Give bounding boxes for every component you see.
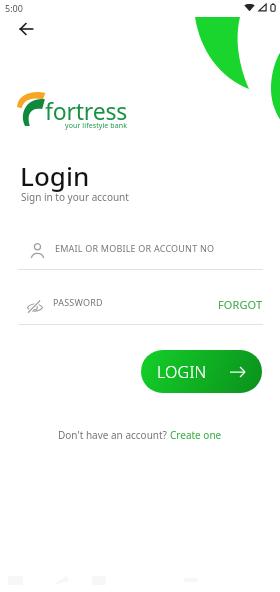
staticText: Sign in to your account: [21, 190, 129, 204]
button[interactable]: FORGOT: [218, 297, 280, 312]
staticText: LOGIN: [157, 361, 207, 383]
staticText: Login: [20, 158, 90, 193]
button[interactable]: Back: [7, 10, 45, 48]
staticText: EMAIL OR MOBILE OR ACCOUNT NO: [55, 242, 215, 254]
staticText: Create one: [170, 428, 222, 442]
button[interactable]: Back: [86, 570, 112, 590]
staticText: fortress: [45, 95, 128, 126]
button[interactable]: Create one: [170, 428, 222, 442]
staticText: Don't have an account?: [58, 428, 170, 442]
button[interactable]: EMAIL OR MOBILE OR ACCOUNT NO: [0, 232, 280, 264]
staticText: 5:00: [5, 2, 23, 14]
staticText: PASSWORD: [53, 296, 103, 308]
button[interactable]: Recents: [2, 570, 28, 590]
staticText: FORGOT: [218, 297, 263, 312]
staticText: your lifestyle bank: [65, 121, 128, 131]
button[interactable]: LOGIN: [141, 350, 262, 393]
